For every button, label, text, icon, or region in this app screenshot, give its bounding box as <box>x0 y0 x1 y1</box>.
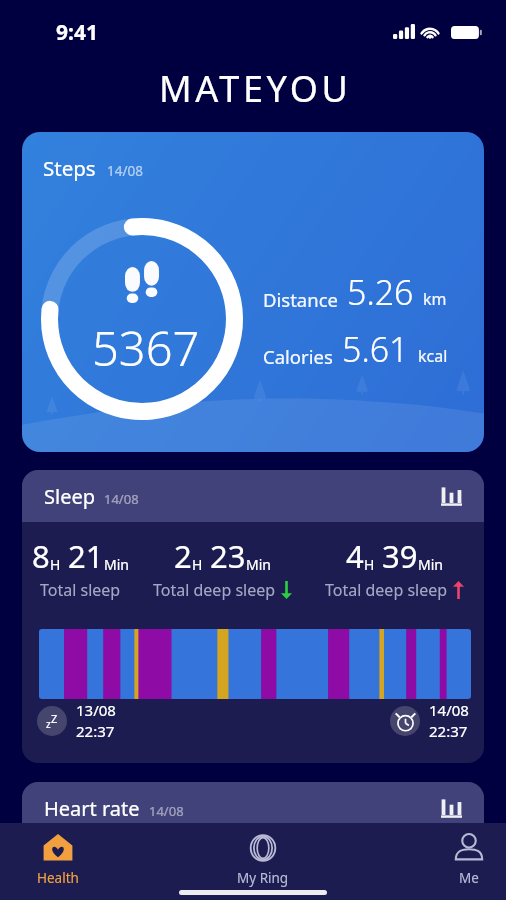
staticText: Calories <box>263 344 333 369</box>
button[interactable]: Steps <box>22 132 484 452</box>
staticText: 8 <box>32 535 50 577</box>
staticText: MATEYOU <box>159 64 352 113</box>
staticText: H <box>50 555 61 574</box>
staticText: H <box>192 555 203 574</box>
button[interactable]: Statistics <box>436 481 466 511</box>
staticText: 14/08 <box>104 490 139 508</box>
staticText: 22:37 <box>429 721 468 741</box>
staticText: 14/08 <box>107 162 143 180</box>
staticText: 21 <box>68 535 104 577</box>
staticText: My Ring <box>237 869 289 887</box>
staticText: 5.61 <box>342 326 409 372</box>
staticText: Health <box>37 869 79 887</box>
staticText: Total deep sleep <box>153 579 276 601</box>
staticText: Min <box>418 555 443 574</box>
staticText: Steps <box>43 154 96 182</box>
staticText: Heart rate <box>44 795 140 822</box>
staticText: Z <box>51 711 58 726</box>
staticText: 14/08 <box>429 700 469 720</box>
button[interactable]: Sleep <box>22 470 484 522</box>
button[interactable]: Health <box>8 833 108 887</box>
staticText: 4 <box>346 535 364 577</box>
staticText: Total sleep <box>40 579 121 601</box>
button[interactable]: 14/08 <box>390 700 469 741</box>
staticText: z <box>46 717 51 731</box>
staticText: Min <box>246 555 271 574</box>
button[interactable]: Statistics <box>436 793 466 823</box>
staticText: H <box>364 555 375 574</box>
staticText: Min <box>104 555 129 574</box>
staticText: Sleep <box>44 483 95 510</box>
button[interactable]: Z <box>37 700 116 741</box>
button[interactable]: Heart rate <box>22 782 484 834</box>
staticText: 13/08 <box>76 700 116 720</box>
staticText: kcal <box>418 345 448 367</box>
staticText: 39 <box>382 535 418 577</box>
staticText: Total deep sleep <box>325 579 448 601</box>
staticText: Me <box>459 869 479 887</box>
staticText: 23 <box>210 535 246 577</box>
staticText: 5367 <box>92 316 200 380</box>
staticText: 9:41 <box>56 18 98 47</box>
button[interactable]: Me <box>419 833 506 887</box>
button[interactable]: My Ring <box>213 833 313 887</box>
staticText: 14/08 <box>149 802 184 820</box>
staticText: km <box>423 288 447 310</box>
staticText: 2 <box>174 535 192 577</box>
staticText: 22:37 <box>76 721 115 741</box>
staticText: 5.26 <box>347 269 414 315</box>
staticText: Distance <box>263 287 338 312</box>
